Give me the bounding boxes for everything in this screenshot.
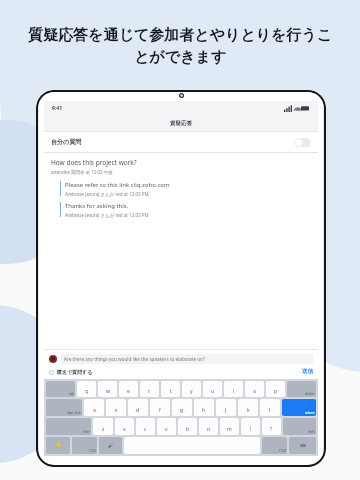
- staticText: m: [227, 426, 232, 433]
- button[interactable]: tab: [46, 381, 75, 397]
- staticText: ·: [191, 383, 192, 388]
- staticText: ·: [188, 421, 189, 426]
- staticText: ·: [226, 402, 227, 407]
- staticText: ·: [124, 421, 125, 426]
- staticText: 🎤: [108, 443, 113, 448]
- staticText: 🙂: [56, 443, 61, 448]
- staticText: shift: [308, 430, 315, 434]
- staticText: Please refer to this link cliq.zoho.com: [65, 181, 170, 189]
- staticText: attendee 質問者 at 12:02 午後: [51, 169, 113, 175]
- staticText: ·: [204, 402, 205, 407]
- button[interactable]: ·: [224, 381, 243, 397]
- staticText: ·: [160, 402, 161, 407]
- button[interactable]: Are there any things you would like the …: [61, 354, 313, 364]
- staticText: ·: [166, 421, 167, 426]
- staticText: ·: [103, 421, 104, 426]
- staticText: ·: [248, 402, 249, 407]
- button[interactable]: 🙂: [46, 437, 70, 454]
- staticText: v: [165, 426, 168, 433]
- staticText: g: [180, 407, 184, 414]
- button[interactable]: shift: [46, 418, 91, 435]
- staticText: Ambrose Jesuraj さんが red at 12:03 PM: [65, 212, 149, 218]
- staticText: Thanks for asking this.: [65, 202, 129, 210]
- button[interactable]: ·: [241, 418, 260, 435]
- button[interactable]: .?123: [72, 437, 97, 454]
- staticText: Are there any things you would like the …: [64, 356, 205, 362]
- button[interactable]: ·: [182, 381, 201, 397]
- staticText: 質疑応答: [170, 120, 192, 127]
- staticText: return: [305, 411, 315, 415]
- button[interactable]: ·: [77, 381, 96, 397]
- staticText: j: [225, 407, 227, 414]
- button[interactable]: ·: [262, 418, 281, 435]
- button[interactable]: ·: [161, 381, 180, 397]
- staticText: h: [202, 407, 206, 414]
- button[interactable]: Toggle my questions: [294, 138, 311, 147]
- button[interactable]: ·: [216, 399, 236, 416]
- button[interactable]: How does this project work?: [51, 158, 137, 175]
- button[interactable]: ·: [128, 399, 148, 416]
- staticText: u: [211, 388, 215, 395]
- staticText: s: [115, 407, 118, 414]
- staticText: t: [170, 388, 172, 395]
- button[interactable]: ·: [119, 381, 138, 397]
- staticText: .?123: [88, 449, 96, 453]
- button[interactable]: Please refer to this link cliq.zoho.com: [60, 181, 311, 197]
- button[interactable]: ·: [115, 418, 134, 435]
- staticText: 質疑応答を通じて参加者とやりとりを行うこ とができます: [16, 26, 344, 66]
- button[interactable]: ·: [266, 381, 285, 397]
- button[interactable]: return: [282, 399, 316, 416]
- staticText: ·: [209, 421, 210, 426]
- button[interactable]: ·: [150, 399, 170, 416]
- button[interactable]: ⌨: [289, 437, 316, 454]
- staticText: d: [136, 407, 140, 414]
- staticText: f: [159, 407, 161, 414]
- button[interactable]: ·: [238, 399, 258, 416]
- button[interactable]: 🎤: [99, 437, 122, 454]
- button[interactable]: shift: [283, 418, 316, 435]
- button[interactable]: ·: [98, 381, 117, 397]
- staticText: w: [106, 388, 110, 395]
- button[interactable]: ·: [172, 399, 192, 416]
- staticText: ·: [94, 402, 95, 407]
- staticText: 匿名で質問する: [57, 369, 93, 375]
- staticText: n: [207, 426, 211, 433]
- staticText: ·: [138, 402, 139, 407]
- staticText: ·: [255, 383, 256, 388]
- button[interactable]: ·: [245, 381, 264, 397]
- button[interactable]: ·: [199, 418, 218, 435]
- button[interactable]: ·: [203, 381, 222, 397]
- button[interactable]: .?123: [262, 437, 287, 454]
- button[interactable]: 匿名で質問する: [49, 369, 93, 375]
- button[interactable]: 送信: [302, 368, 313, 375]
- button[interactable]: ·: [157, 418, 176, 435]
- button[interactable]: 自分の質問: [44, 132, 318, 152]
- staticText: ·: [270, 402, 271, 407]
- staticText: ·: [128, 383, 129, 388]
- staticText: shift: [83, 430, 90, 434]
- staticText: i: [233, 388, 235, 395]
- staticText: .?123: [278, 449, 286, 453]
- button[interactable]: ·: [220, 418, 239, 435]
- button[interactable]: ·: [194, 399, 214, 416]
- staticText: Ambrose Jesuraj さんが red at 12:03 PM: [65, 191, 149, 197]
- button[interactable]: ·: [178, 418, 197, 435]
- button[interactable]: Thanks for asking this.: [60, 202, 311, 218]
- button[interactable]: ·: [84, 399, 104, 416]
- staticText: r: [148, 388, 151, 395]
- button[interactable]: ·: [136, 418, 155, 435]
- staticText: ·: [251, 421, 252, 426]
- staticText: ·: [213, 383, 214, 388]
- button[interactable]: ·: [106, 399, 126, 416]
- staticText: delete: [305, 392, 315, 396]
- staticText: 自分の質問: [51, 138, 82, 146]
- staticText: !: [250, 426, 252, 433]
- button[interactable]: ·: [140, 381, 159, 397]
- button[interactable]: ·: [260, 399, 280, 416]
- staticText: x: [123, 426, 126, 433]
- button[interactable]: ·: [93, 418, 113, 435]
- staticText: k: [247, 407, 250, 414]
- button[interactable]: caps lock: [46, 399, 82, 416]
- button[interactable]: delete: [287, 381, 316, 397]
